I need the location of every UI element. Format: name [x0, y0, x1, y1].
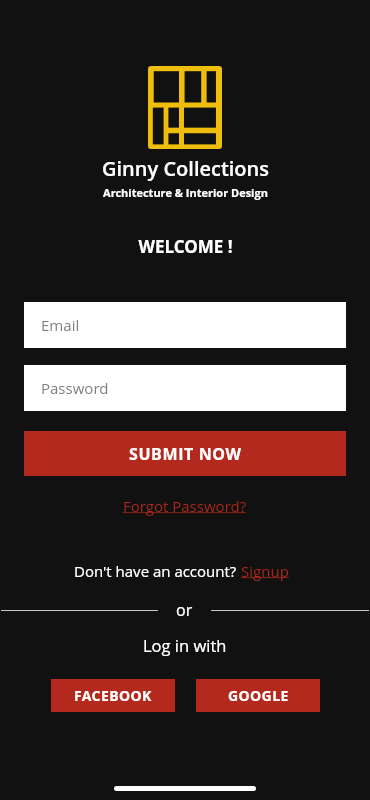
staticText: FACEBOOK — [74, 686, 152, 705]
staticText: Password — [41, 378, 109, 398]
button[interactable]: GOOGLE — [196, 679, 320, 712]
staticText: Signup — [241, 561, 289, 581]
staticText: Architecture & Interior Design — [103, 185, 268, 200]
button[interactable]: Signup — [241, 561, 289, 581]
staticText: Don't have an account? — [74, 561, 241, 581]
staticText: or — [176, 599, 193, 621]
button[interactable]: Forgot Password? — [123, 496, 247, 516]
staticText: WELCOME ! — [138, 235, 233, 258]
button[interactable]: FACEBOOK — [51, 679, 175, 712]
staticText: SUBMIT NOW — [129, 443, 242, 465]
staticText: Ginny Collections — [102, 155, 269, 182]
staticText: Email — [41, 315, 80, 335]
staticText: Forgot Password? — [123, 496, 247, 516]
button[interactable]: Password — [24, 365, 346, 411]
staticText: GOOGLE — [228, 686, 289, 705]
button[interactable]: Email — [24, 302, 346, 348]
staticText: Log in with — [143, 634, 227, 656]
button[interactable]: SUBMIT NOW — [24, 431, 346, 476]
